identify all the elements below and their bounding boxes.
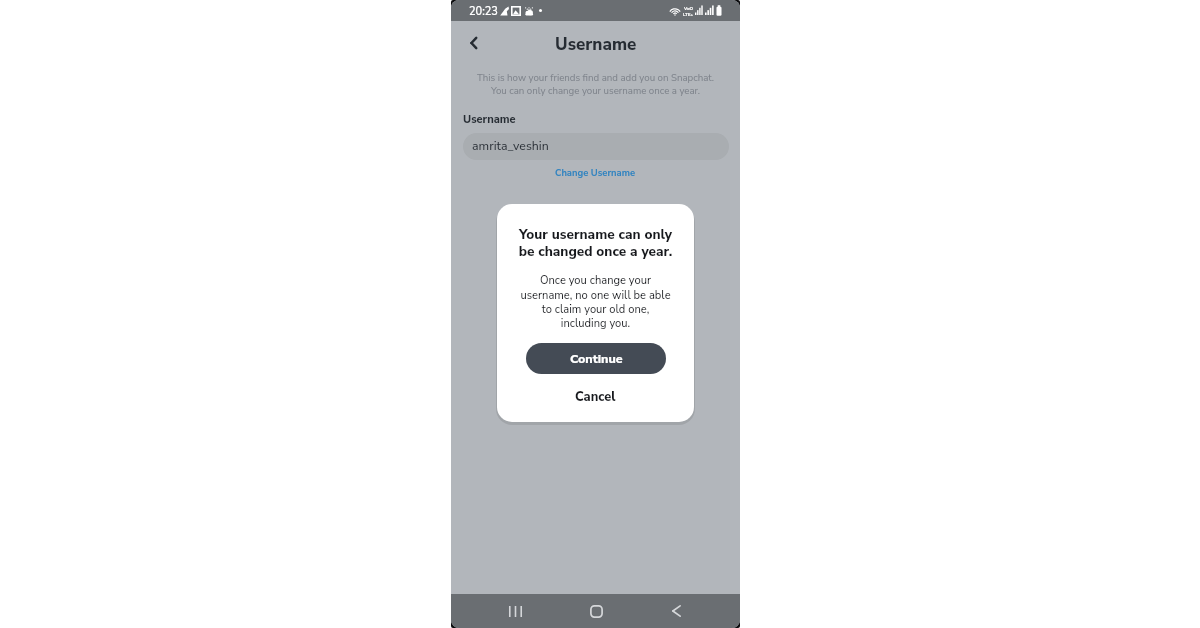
button[interactable]: amrita_veshin	[463, 133, 729, 160]
button[interactable]: Back	[462, 31, 486, 55]
staticText: LTE+	[683, 11, 694, 17]
staticText: Once you change your username, no one wi…	[497, 273, 694, 331]
staticText: VoO	[684, 5, 694, 11]
button[interactable]: Back	[659, 594, 693, 628]
staticText: Continue	[570, 350, 623, 367]
button[interactable]: Continue	[526, 343, 666, 374]
button[interactable]: Recent apps	[498, 594, 532, 628]
staticText: Cancel	[575, 388, 616, 405]
button[interactable]: Cancel	[497, 379, 694, 413]
staticText: Username	[555, 33, 637, 56]
staticText: amrita_veshin	[472, 138, 549, 155]
button[interactable]: Home	[579, 594, 613, 628]
staticText: 20:23	[469, 4, 498, 19]
staticText: This is how your friends find and add yo…	[451, 71, 740, 97]
button[interactable]: Change Username	[547, 163, 644, 182]
staticText: Username	[463, 112, 516, 127]
staticText: Your username can only be changed once a…	[497, 225, 694, 261]
